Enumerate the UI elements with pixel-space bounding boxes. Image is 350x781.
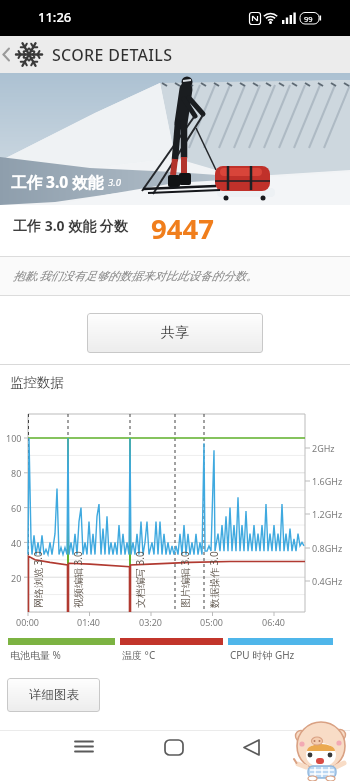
staticText: 3.0 [108,176,121,189]
staticText: 工作 3.0 效能 分数 [13,216,128,235]
staticText: 网络浏览 3.0 [31,551,45,608]
staticText: 视频编辑 3.0 [71,551,85,608]
staticText: 99 [304,14,313,24]
staticText: 2GHz [312,442,335,454]
staticText: 图片编辑 3.0 [178,551,192,608]
staticText: 80 [11,467,22,479]
staticText: 11:26 [38,8,72,26]
staticText: 抱歉,我们没有足够的数据来对比此设备的分数。 [13,268,258,284]
staticText: 05:00 [200,616,224,628]
staticText: 03:20 [139,616,163,628]
button[interactable]: SCORE DETAILS [0,36,350,73]
staticText: 20 [11,572,22,584]
staticText: 01:40 [77,616,101,628]
button[interactable] [238,735,270,767]
staticText: 详细图表 [29,687,79,703]
staticText: 100 [6,432,22,444]
staticText: 监控数据 [10,374,64,391]
staticText: 1.6GHz [312,475,343,487]
staticText: 工作 3.0 效能 [11,171,104,192]
button[interactable] [158,735,190,767]
button[interactable]: 详细图表 [7,678,100,712]
staticText: 0.4GHz [312,575,343,587]
staticText: SCORE DETAILS [52,44,173,66]
button[interactable] [68,735,100,767]
staticText: 温度 °C [122,648,156,662]
staticText: 1.2GHz [312,508,343,520]
staticText: 0.8GHz [312,542,343,554]
staticText: 00:00 [16,616,40,628]
staticText: 06:40 [262,616,286,628]
button[interactable]: 共享 [87,313,263,353]
staticText: 数据操作 3.0 [207,551,221,608]
staticText: 电池电量 % [10,648,61,662]
staticText: 9447 [151,210,214,247]
staticText: 共享 [161,324,189,342]
staticText: 文档编写 3.0 [133,551,147,608]
staticText: 60 [11,502,22,514]
staticText: CPU 时钟 GHz [230,648,295,662]
staticText: 40 [11,537,22,549]
